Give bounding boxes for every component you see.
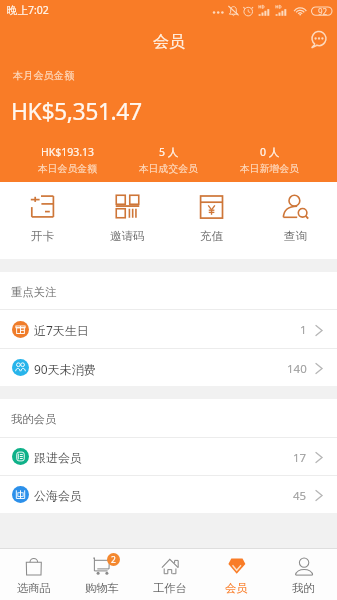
staticText: 140 <box>287 361 307 377</box>
staticText: 开卡 <box>31 229 54 243</box>
staticText: 我的会员 <box>11 412 57 426</box>
button[interactable]: 2 <box>68 549 136 595</box>
button[interactable]: 会员 <box>203 549 270 595</box>
staticText: 购物车 <box>85 581 119 595</box>
staticText: HK$5,351.47 <box>11 95 142 126</box>
staticText: 本日新增会员 <box>240 163 299 175</box>
button[interactable]: 充值 <box>169 182 253 243</box>
staticText: 充值 <box>200 229 223 243</box>
button[interactable]: 跟进会员 <box>0 438 337 475</box>
staticText: 选商品 <box>17 581 51 595</box>
staticText: 重点关注 <box>11 285 57 299</box>
staticText: 本日会员金额 <box>38 163 97 175</box>
staticText: 90天未消费 <box>34 361 96 377</box>
button[interactable]: 近7天生日 <box>0 310 337 348</box>
staticText: HK$193.13 <box>41 145 95 159</box>
button[interactable]: More options <box>305 25 333 53</box>
staticText: 0 人 <box>260 145 280 159</box>
staticText: 我的 <box>292 581 315 595</box>
staticText: 5 人 <box>159 145 179 159</box>
staticText: 晚上7:02 <box>7 3 49 17</box>
button[interactable]: 我的 <box>270 549 337 595</box>
button[interactable]: 邀请码 <box>85 182 169 243</box>
button[interactable]: 公海会员 <box>0 476 337 513</box>
button[interactable]: 90天未消费 <box>0 349 337 386</box>
staticText: 本日成交会员 <box>139 163 198 175</box>
button[interactable]: 开卡 <box>0 182 85 243</box>
staticText: 92 <box>318 6 328 17</box>
staticText: 本月会员金额 <box>13 69 75 82</box>
staticText: 1 <box>300 322 307 338</box>
staticText: 2 <box>111 554 116 566</box>
button[interactable]: 查询 <box>253 182 337 243</box>
staticText: 公海会员 <box>34 488 82 503</box>
staticText: 45 <box>293 488 307 504</box>
button[interactable]: 选商品 <box>0 549 68 595</box>
staticText: 会员 <box>225 581 248 595</box>
staticText: 跟进会员 <box>34 450 82 465</box>
staticText: 17 <box>293 450 307 466</box>
button[interactable]: 工作台 <box>136 549 203 595</box>
staticText: 邀请码 <box>110 229 145 243</box>
staticText: 工作台 <box>153 581 187 595</box>
staticText: 会员 <box>153 32 185 52</box>
staticText: 近7天生日 <box>34 322 89 338</box>
staticText: 查询 <box>284 229 307 243</box>
